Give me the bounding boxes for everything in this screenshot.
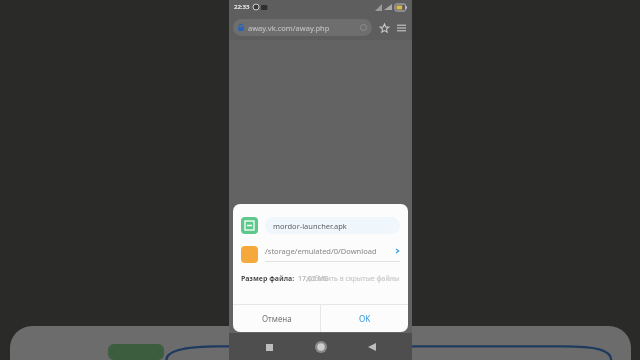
button[interactable]: Отмена [233,305,320,332]
button[interactable]: OK [321,305,408,332]
button[interactable]: away.vk.com/away.php [233,19,372,36]
staticText: 17.02 МБ [298,274,329,284]
staticText: Отмена [262,313,292,324]
button[interactable]: mordor-launcher.apk [265,217,400,234]
button[interactable]: Bookmark [377,21,391,35]
staticText: OK [359,313,371,324]
staticText: Размер файла: [241,274,295,284]
button[interactable]: Recents [258,336,280,358]
button[interactable]: /storage/emulated/0/Download [241,242,400,266]
staticText: 22:33 [234,3,250,11]
staticText: /storage/emulated/0/Download [265,246,395,256]
staticText: добавить в скрытые файлы [306,274,400,284]
button[interactable]: Menu [394,21,408,35]
staticText: mordor-launcher.apk [273,221,347,231]
button[interactable]: Back [361,336,383,358]
staticText: away.vk.com/away.php [248,23,330,33]
button[interactable]: Home [310,336,332,358]
